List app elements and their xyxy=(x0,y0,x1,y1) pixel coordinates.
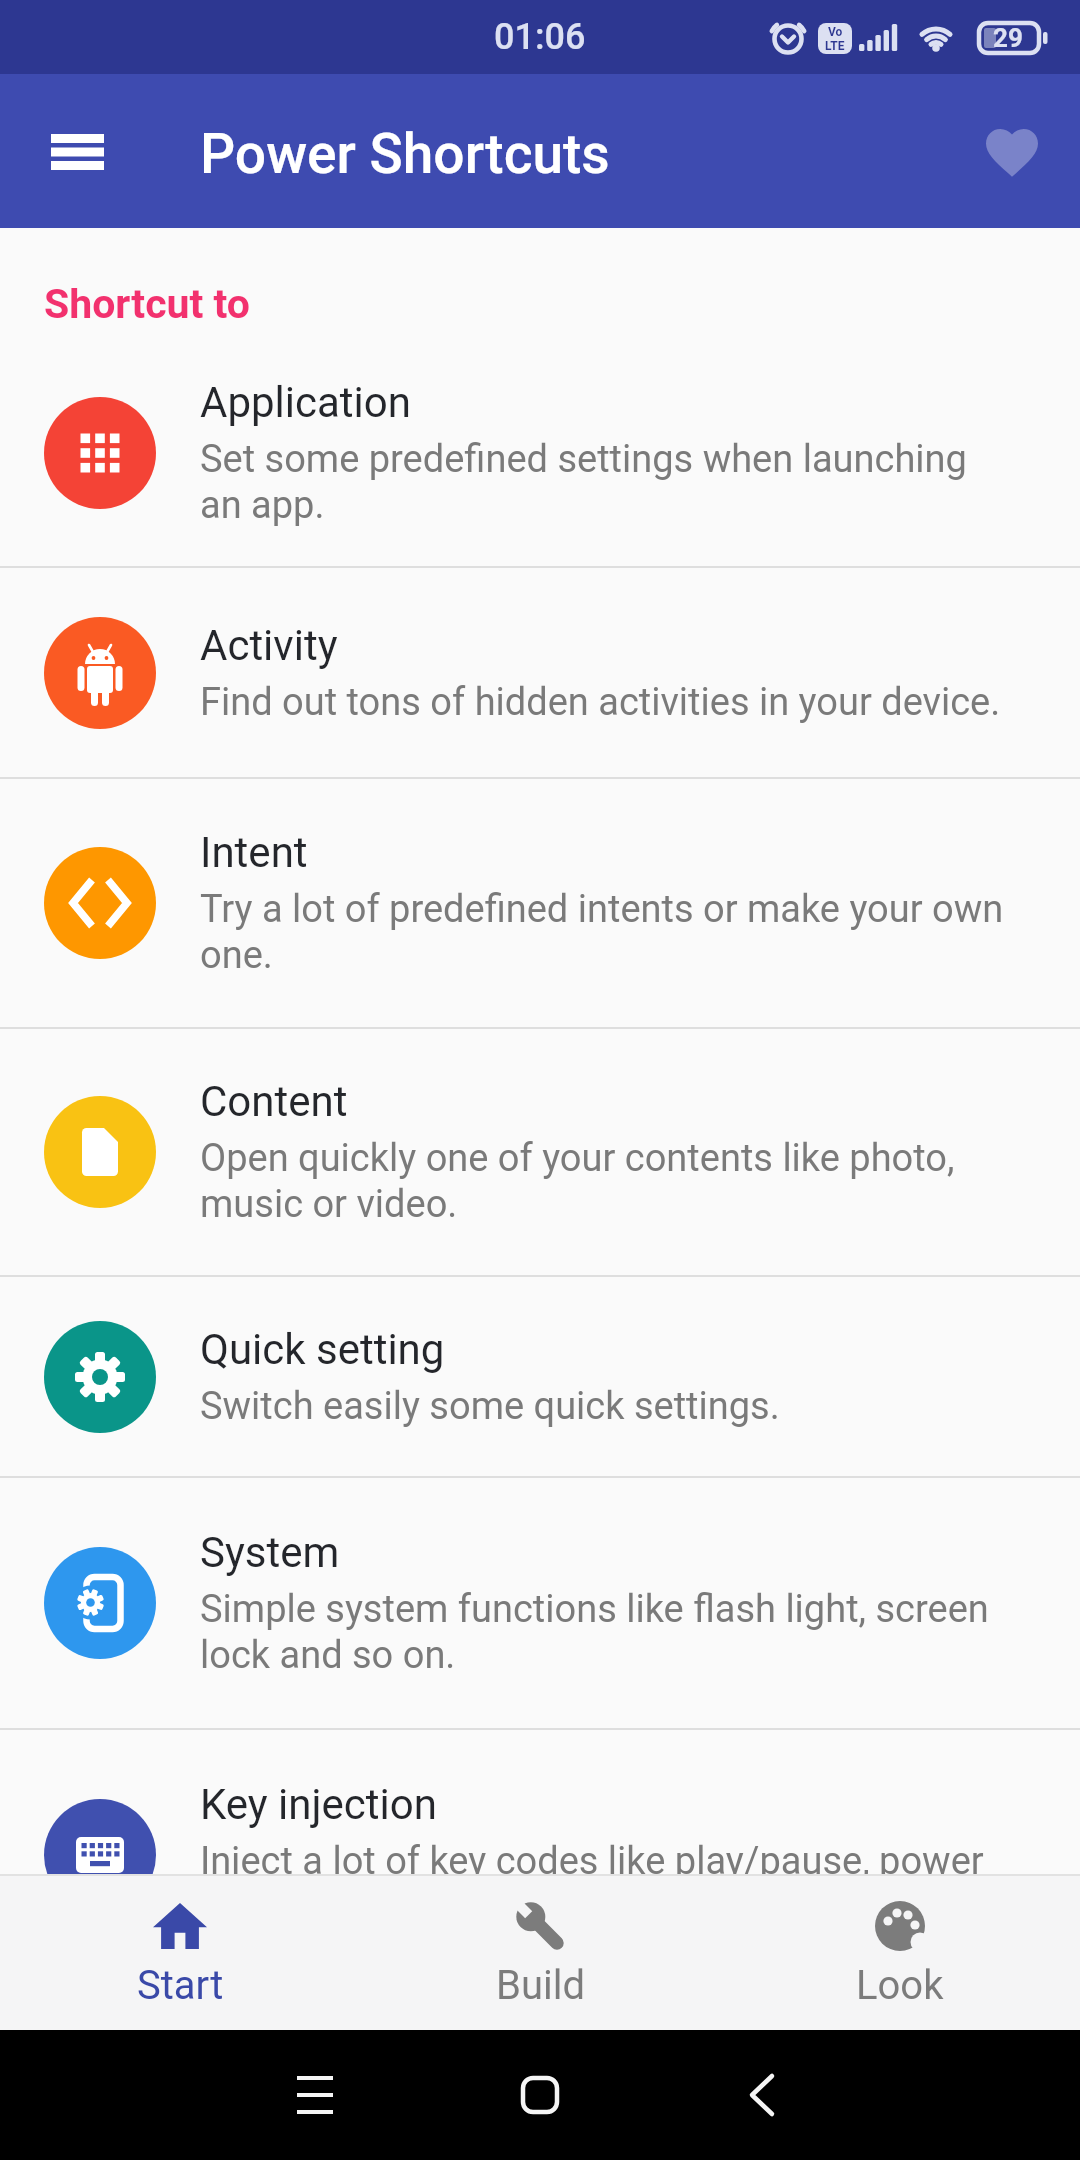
staticText: Look xyxy=(856,1962,944,2009)
staticText: 01:06 xyxy=(494,16,586,58)
button[interactable]: Activity xyxy=(0,568,1080,777)
staticText: Set some predefined settings when launch… xyxy=(200,437,967,528)
staticText: Power Shortcuts xyxy=(200,122,610,186)
button[interactable]: Start xyxy=(0,1876,360,2030)
button[interactable] xyxy=(980,119,1044,183)
button[interactable] xyxy=(36,111,116,191)
button[interactable]: Quick setting xyxy=(0,1277,1080,1476)
button[interactable]: Application xyxy=(0,340,1080,566)
staticText: Intent xyxy=(200,828,308,877)
button[interactable]: Key injection xyxy=(0,1730,1080,1874)
staticText: Find out tons of hidden activities in yo… xyxy=(200,680,1001,725)
button[interactable]: Content xyxy=(0,1029,1080,1275)
button[interactable]: Intent xyxy=(0,779,1080,1027)
staticText: Open quickly one of your contents like p… xyxy=(200,1136,955,1227)
staticText: Try a lot of predefined intents or make … xyxy=(200,887,1004,978)
staticText: Vo xyxy=(828,25,843,39)
staticText: 29 xyxy=(993,23,1023,53)
staticText: Quick setting xyxy=(200,1325,445,1374)
staticText: Application xyxy=(200,378,411,427)
staticText: Shortcut to xyxy=(44,280,251,328)
staticText: System xyxy=(200,1528,340,1577)
button[interactable]: Build xyxy=(360,1876,720,2030)
staticText: Switch easily some quick settings. xyxy=(200,1384,780,1429)
staticText: Key injection xyxy=(200,1780,437,1829)
staticText: Activity xyxy=(200,621,338,670)
staticText: Content xyxy=(200,1077,348,1126)
staticText: Start xyxy=(137,1962,224,2009)
button[interactable]: System xyxy=(0,1478,1080,1728)
button[interactable]: Look xyxy=(720,1876,1080,2030)
staticText: Inject a lot of key codes like play/paus… xyxy=(200,1839,984,1874)
staticText: LTE xyxy=(825,39,845,53)
staticText: Simple system functions like flash light… xyxy=(200,1587,989,1678)
staticText: Build xyxy=(496,1962,585,2009)
